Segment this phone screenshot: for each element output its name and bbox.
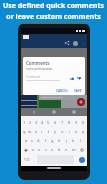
button[interactable]: c <box>42 145 49 154</box>
button[interactable]: Thumbs up <box>70 76 75 81</box>
staticText: s <box>31 138 33 143</box>
button[interactable]: Shift <box>21 145 30 154</box>
button[interactable]: e <box>33 127 39 136</box>
button[interactable]: x <box>36 145 42 154</box>
button[interactable]: f <box>42 136 49 145</box>
staticText: m <box>72 147 76 152</box>
button[interactable]: g <box>49 136 56 145</box>
button[interactable]: 7 <box>59 117 66 127</box>
button[interactable]: More options <box>81 41 86 46</box>
staticText: l <box>80 138 82 143</box>
staticText: d <box>37 138 40 143</box>
button[interactable]: Account <box>73 41 78 46</box>
button[interactable]: k <box>70 136 77 145</box>
button[interactable]: Add <box>77 98 85 106</box>
staticText: h <box>58 138 61 143</box>
staticText: y <box>54 129 57 134</box>
staticText: n <box>65 147 68 152</box>
button[interactable]: p <box>80 127 87 136</box>
button[interactable]: Thumbs down <box>77 76 82 81</box>
button[interactable]: 2 <box>27 117 33 127</box>
staticText: x <box>38 147 41 152</box>
staticText: 2 <box>29 120 32 125</box>
staticText: g <box>51 138 54 143</box>
button[interactable]: d <box>35 136 42 145</box>
button[interactable]: o <box>73 127 80 136</box>
staticText: c <box>45 147 47 152</box>
button[interactable]: Enter <box>79 157 85 163</box>
button[interactable]: CANCEL <box>55 89 70 93</box>
staticText: 7 <box>61 120 64 125</box>
staticText: b <box>58 147 61 152</box>
staticText: 8 <box>68 120 71 125</box>
button[interactable]: v <box>49 145 56 154</box>
button[interactable]: a <box>23 136 29 145</box>
button[interactable]: h <box>56 136 63 145</box>
button[interactable]: j <box>63 136 70 145</box>
button[interactable]: 4 <box>39 117 45 127</box>
button[interactable]: 5 <box>45 117 52 127</box>
button[interactable]: u <box>59 127 66 136</box>
button[interactable]: 6 <box>52 117 59 127</box>
button[interactable]: ?123 <box>22 155 32 164</box>
staticText: 5 <box>47 120 50 125</box>
staticText: 0 <box>82 120 85 125</box>
button[interactable]: w <box>27 127 33 136</box>
button[interactable]: b <box>56 145 63 154</box>
button[interactable]: n <box>63 145 70 154</box>
button[interactable]: Share <box>64 40 70 46</box>
button[interactable]: r <box>39 127 45 136</box>
button[interactable]: 9 <box>73 117 80 127</box>
button[interactable]: Backspace <box>77 145 87 154</box>
staticText: k <box>72 138 75 143</box>
staticText: a <box>25 138 28 143</box>
button[interactable]: Home <box>52 110 56 114</box>
button[interactable]: SAVE <box>73 89 83 93</box>
staticText: v <box>51 147 54 152</box>
staticText: r <box>41 129 43 134</box>
staticText: e <box>35 129 38 134</box>
staticText: ?123 <box>24 158 30 162</box>
button[interactable]: Back <box>32 110 36 114</box>
staticText: Comment <box>26 75 40 79</box>
button[interactable]: z <box>30 145 36 154</box>
staticText: 6 <box>54 120 57 125</box>
staticText: CANCEL <box>56 89 69 93</box>
staticText: f <box>45 138 47 143</box>
staticText: Comments <box>26 60 50 66</box>
staticText: t <box>48 129 50 134</box>
staticText: i <box>69 129 71 134</box>
staticText: or leave custom comments <box>6 12 101 22</box>
staticText: j <box>66 138 68 143</box>
button[interactable]: l <box>77 136 84 145</box>
staticText: SAVE <box>74 89 82 93</box>
staticText: p <box>82 129 85 134</box>
staticText: z <box>32 147 34 152</box>
staticText: o <box>75 129 78 134</box>
staticText: 1 <box>23 120 26 125</box>
staticText: q <box>23 129 26 134</box>
staticText: 9 <box>75 120 78 125</box>
button[interactable]: 1 <box>21 117 27 127</box>
staticText: Use defined quick comments <box>3 1 104 11</box>
staticText: w <box>28 129 32 134</box>
button[interactable]: 8 <box>66 117 73 127</box>
button[interactable]: y <box>52 127 59 136</box>
button[interactable]: , <box>32 155 37 164</box>
button[interactable]: 0 <box>80 117 87 127</box>
button[interactable]: s <box>29 136 35 145</box>
button[interactable]: t <box>45 127 52 136</box>
button[interactable]: Share <box>21 34 87 48</box>
button[interactable]: Recents <box>72 110 76 114</box>
staticText: some participation <box>26 67 53 71</box>
staticText: . <box>76 158 77 162</box>
button[interactable]: 3 <box>33 117 39 127</box>
button[interactable]: m <box>70 145 77 154</box>
staticText: , <box>34 158 35 162</box>
staticText: 4 <box>41 120 44 125</box>
button[interactable]: i <box>66 127 73 136</box>
staticText: 3 <box>35 120 38 125</box>
button[interactable]: q <box>21 127 27 136</box>
